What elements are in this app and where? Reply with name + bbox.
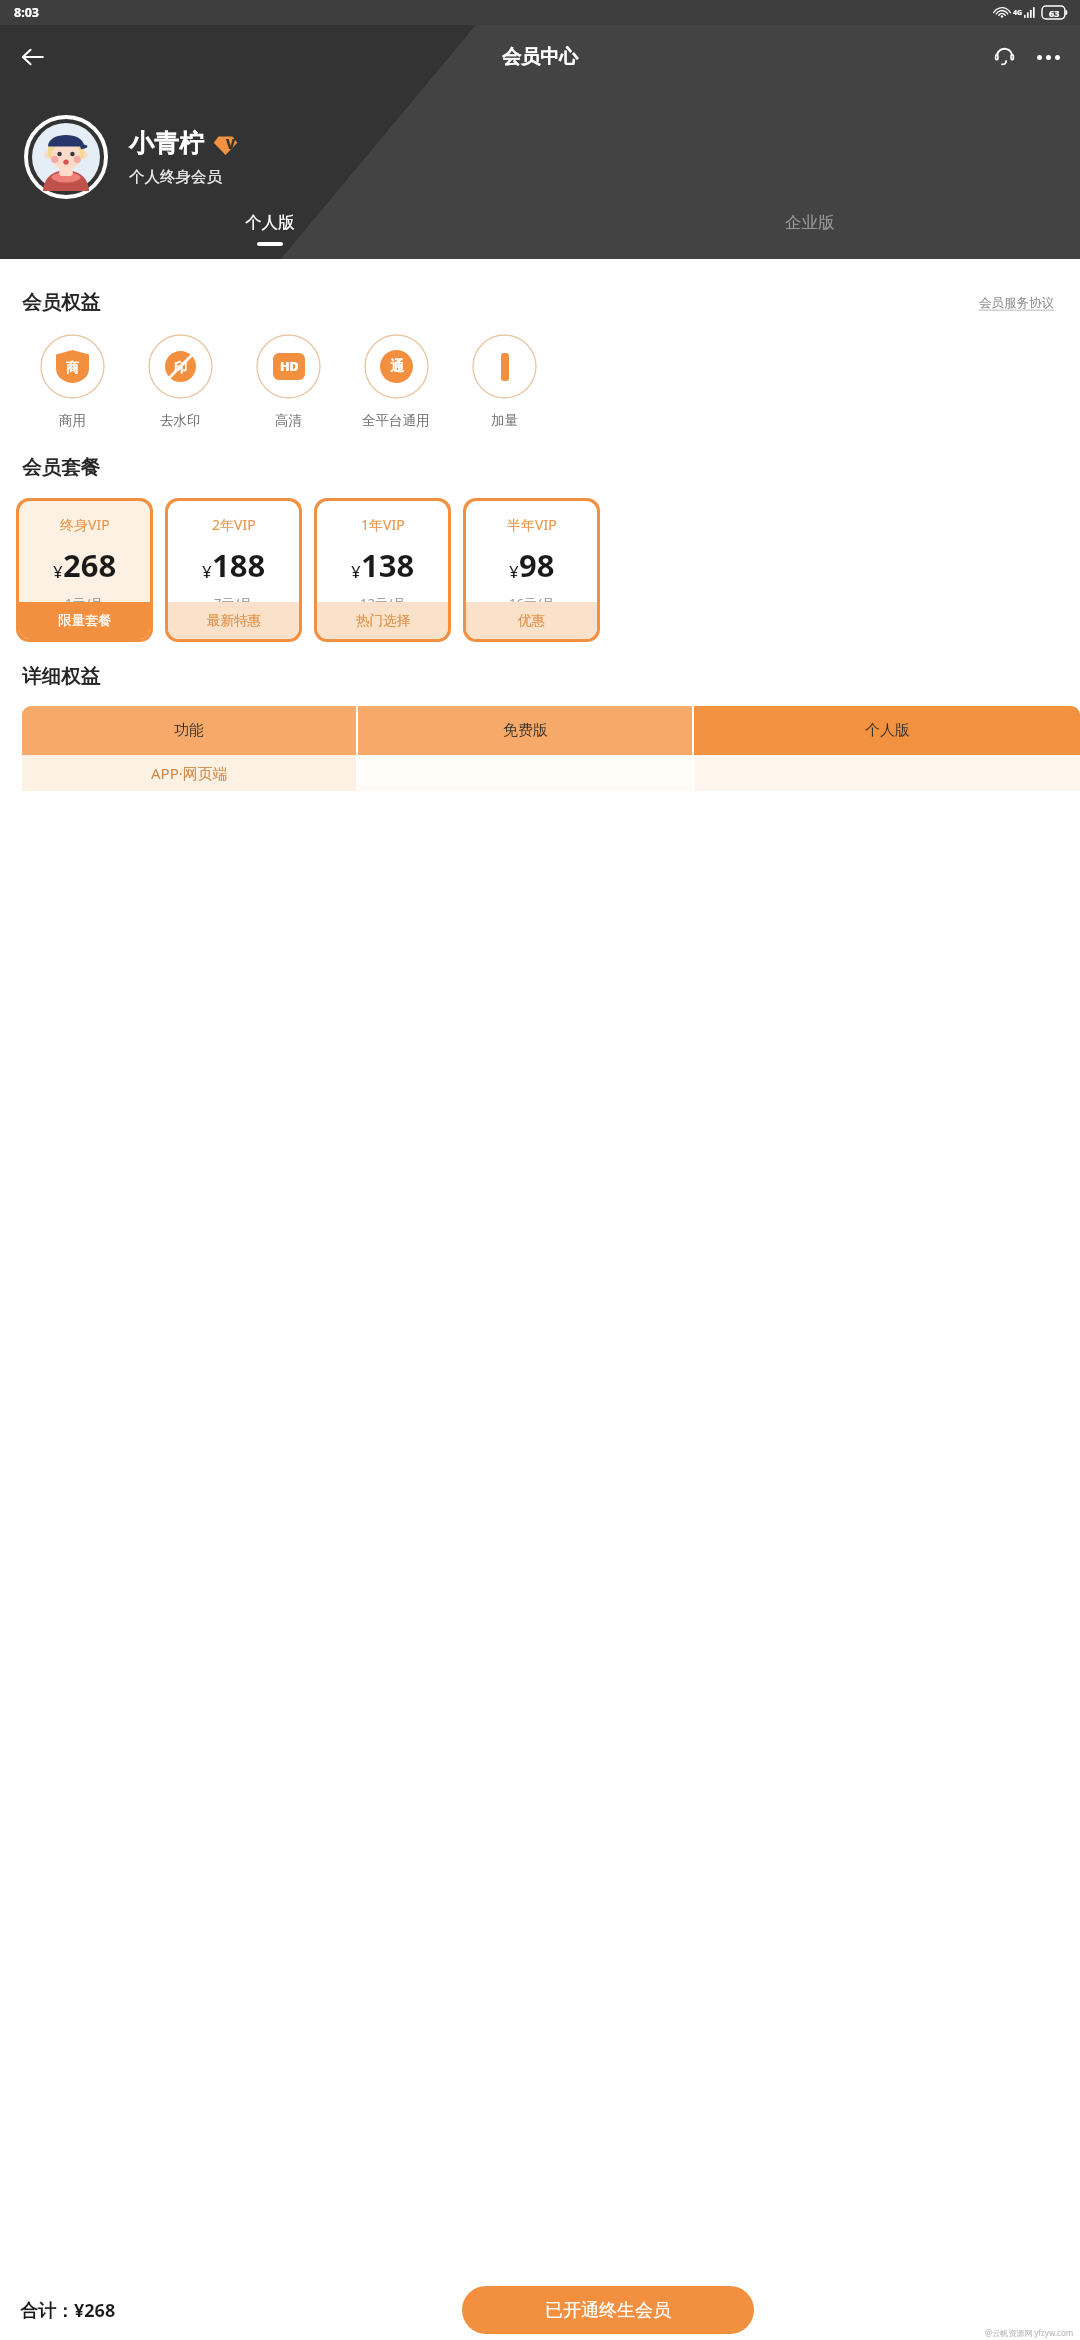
staticText: ¥	[202, 560, 212, 583]
staticText: 商	[66, 359, 79, 375]
staticText: 商用	[59, 412, 86, 429]
button[interactable]: 企业版	[540, 198, 1080, 259]
button[interactable]: 加量	[450, 334, 558, 429]
staticText: 通	[390, 358, 404, 376]
staticText: 63	[1049, 7, 1060, 19]
staticText: 138	[361, 544, 415, 586]
staticText: 全平台通用	[362, 412, 430, 429]
staticText: 企业版	[785, 212, 835, 233]
button[interactable]: Back	[8, 33, 56, 81]
staticText: 个人版	[245, 212, 295, 233]
staticText: 印	[174, 359, 187, 375]
staticText: 会员套餐	[22, 455, 100, 480]
staticText: 16元/月	[509, 594, 555, 602]
staticText: 功能	[174, 721, 204, 740]
staticText: 会员权益	[22, 290, 100, 315]
staticText: APP·网页端	[151, 763, 228, 783]
button[interactable]: More options	[1026, 35, 1070, 79]
staticText: 1年VIP	[361, 515, 405, 534]
staticText: 会员中心	[502, 45, 578, 69]
button[interactable]: 会员服务协议	[975, 291, 1058, 315]
button[interactable]: HD	[234, 334, 342, 429]
staticText: 已开通终生会员	[545, 2299, 671, 2322]
button[interactable]: 已开通终生会员	[462, 2286, 754, 2334]
staticText: 8:03	[14, 4, 39, 21]
staticText: V	[218, 134, 243, 153]
staticText: 个人终身会员	[129, 167, 222, 187]
staticText: 小青柠	[129, 128, 204, 159]
staticText: ¥	[351, 560, 361, 583]
staticText: 268	[63, 544, 117, 586]
button[interactable]: 商	[18, 334, 126, 429]
staticText: 7元/月	[214, 594, 253, 602]
staticText: 免费版	[503, 721, 548, 740]
button[interactable]: 1年VIP	[317, 501, 448, 639]
staticText: 12元/月	[360, 594, 406, 602]
button[interactable]: 免费版	[358, 706, 692, 755]
staticText: 高清	[275, 412, 302, 429]
staticText: @云帆资源网 yfzyw.com	[985, 2327, 1074, 2338]
staticText: HD	[280, 358, 299, 375]
staticText: 最新特惠	[207, 612, 261, 629]
button[interactable]: 功能	[22, 706, 356, 755]
button[interactable]: 个人版	[694, 706, 1080, 755]
staticText: 详细权益	[22, 664, 100, 689]
button[interactable]: 半年VIP	[466, 501, 597, 639]
button[interactable]: 通	[342, 334, 450, 429]
staticText: 优惠	[518, 612, 545, 629]
staticText: ¥	[53, 560, 63, 583]
staticText: 会员服务协议	[979, 295, 1054, 311]
button[interactable]: 2年VIP	[168, 501, 299, 639]
staticText: 去水印	[160, 412, 201, 429]
staticText: 热门选择	[356, 612, 410, 629]
staticText: 4G	[1013, 8, 1023, 18]
staticText: 加量	[491, 412, 518, 429]
staticText: 1元/月	[65, 594, 104, 602]
button[interactable]: 个人版	[0, 198, 540, 259]
staticText: 个人版	[865, 721, 910, 740]
staticText: ¥	[509, 560, 519, 583]
button[interactable]: 印	[126, 334, 234, 429]
staticText: 合计：¥268	[20, 2298, 116, 2323]
staticText: 98	[519, 544, 555, 586]
staticText: 188	[212, 544, 266, 586]
staticText: 2年VIP	[212, 515, 256, 534]
staticText: 半年VIP	[507, 515, 557, 534]
button[interactable]: 终身VIP	[19, 501, 150, 639]
button[interactable]: Customer service	[982, 35, 1026, 79]
staticText: 终身VIP	[60, 515, 110, 534]
button[interactable]: 小青柠	[25, 116, 1080, 198]
staticText: 限量套餐	[58, 612, 112, 629]
